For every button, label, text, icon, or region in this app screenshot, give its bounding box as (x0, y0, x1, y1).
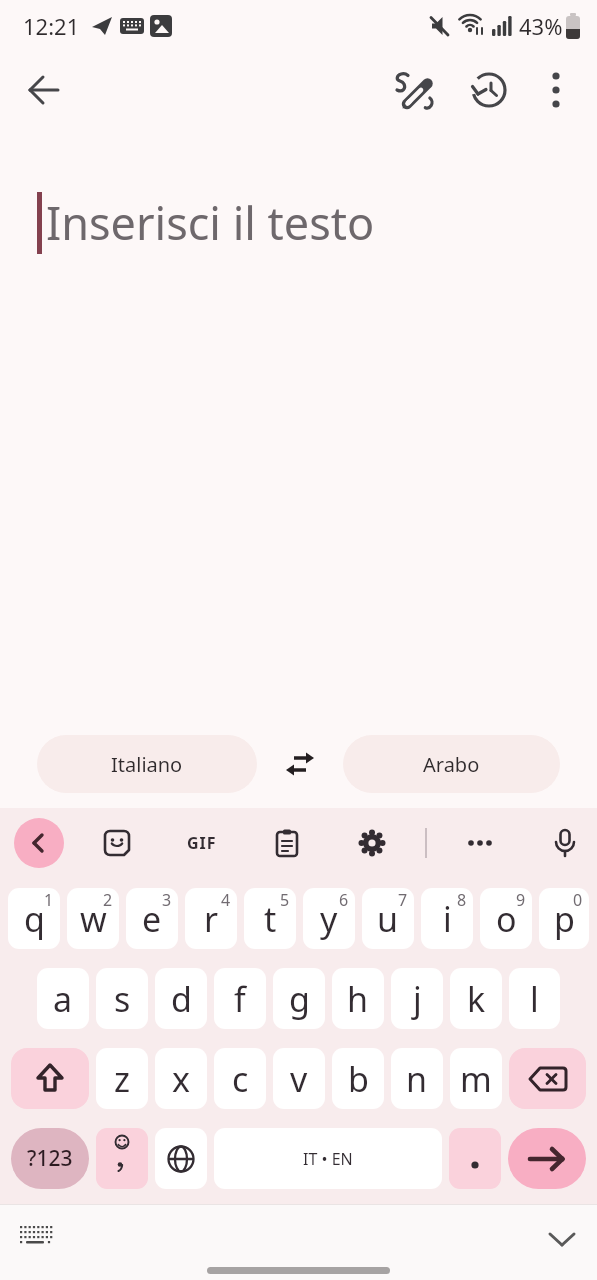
button[interactable] (92, 818, 142, 868)
button[interactable]: t (244, 888, 296, 949)
staticText: u (377, 896, 399, 942)
staticText: z (114, 1056, 130, 1102)
staticText: r (204, 896, 219, 942)
staticText: 6 (339, 889, 349, 911)
button[interactable]: j (391, 968, 443, 1029)
button[interactable]: IT • EN (214, 1128, 442, 1189)
button[interactable]: Arabo (343, 735, 560, 793)
button[interactable]: d (155, 968, 207, 1029)
button[interactable]: Italiano (37, 735, 257, 793)
staticText: 12:21 (23, 11, 80, 41)
staticText: q (24, 896, 45, 942)
staticText: Italiano (111, 751, 183, 778)
staticText: h (347, 976, 369, 1022)
button[interactable] (262, 818, 312, 868)
staticText: i (443, 896, 452, 942)
staticText: m (460, 1056, 492, 1102)
button[interactable]: h (332, 968, 384, 1029)
staticText: o (496, 896, 517, 942)
button[interactable] (540, 818, 590, 868)
staticText: 0 (573, 889, 583, 911)
button[interactable] (449, 1128, 501, 1189)
button[interactable] (11, 1048, 89, 1109)
button[interactable] (509, 1048, 586, 1109)
staticText: IT • EN (303, 1148, 353, 1170)
staticText: a (53, 976, 73, 1022)
button[interactable] (12, 1216, 58, 1262)
staticText: d (171, 976, 192, 1022)
button[interactable] (14, 818, 64, 868)
staticText: 2 (103, 889, 113, 911)
button[interactable]: p (539, 888, 589, 949)
staticText: Inserisci il testo (46, 192, 375, 253)
staticText: n (406, 1056, 428, 1102)
button[interactable]: q (8, 888, 60, 949)
button[interactable]: w (67, 888, 119, 949)
staticText: 1 (44, 889, 54, 911)
button[interactable]: v (273, 1048, 325, 1109)
button[interactable]: k (450, 968, 502, 1029)
staticText: y (320, 896, 338, 942)
button[interactable]: GIF (177, 818, 227, 868)
staticText: j (413, 976, 422, 1022)
staticText: w (80, 896, 107, 942)
button[interactable]: g (273, 968, 325, 1029)
button[interactable] (347, 818, 397, 868)
staticText: GIF (187, 832, 217, 854)
staticText: f (234, 976, 246, 1022)
staticText: e (142, 896, 162, 942)
staticText: 3 (162, 889, 172, 911)
button[interactable] (276, 740, 324, 788)
staticText: ?123 (27, 1144, 73, 1173)
button[interactable]: c (214, 1048, 266, 1109)
staticText: k (467, 976, 486, 1022)
staticText: 43% (519, 11, 563, 41)
button[interactable]: f (214, 968, 266, 1029)
button[interactable] (508, 1128, 586, 1189)
button[interactable] (532, 66, 580, 114)
button[interactable]: n (391, 1048, 443, 1109)
button[interactable]: a (37, 968, 89, 1029)
button[interactable]: o (480, 888, 532, 949)
button[interactable] (539, 1216, 585, 1262)
button[interactable]: ?123 (11, 1128, 89, 1189)
button[interactable]: e (126, 888, 178, 949)
staticText: g (289, 976, 310, 1022)
staticText: 4 (221, 889, 231, 911)
button[interactable]: s (96, 968, 148, 1029)
button[interactable]: u (362, 888, 414, 949)
staticText: v (290, 1056, 308, 1102)
staticText: c (232, 1056, 249, 1102)
button[interactable]: r (185, 888, 237, 949)
staticText: 7 (398, 889, 408, 911)
staticText: p (554, 896, 575, 942)
button[interactable]: y (303, 888, 355, 949)
button[interactable]: l (509, 968, 560, 1029)
button[interactable]: i (421, 888, 473, 949)
button[interactable] (463, 64, 515, 116)
button[interactable] (18, 64, 70, 116)
staticText: 5 (280, 889, 290, 911)
staticText: b (348, 1056, 369, 1102)
staticText: s (114, 976, 131, 1022)
button[interactable]: x (155, 1048, 207, 1109)
staticText: l (530, 976, 539, 1022)
button[interactable]: b (332, 1048, 384, 1109)
button[interactable]: z (96, 1048, 148, 1109)
button[interactable] (155, 1128, 207, 1189)
staticText: Arabo (423, 751, 480, 778)
staticText: 8 (457, 889, 467, 911)
staticText: t (264, 896, 277, 942)
staticText: x (172, 1056, 190, 1102)
button[interactable]: m (450, 1048, 502, 1109)
staticText: 9 (516, 889, 526, 911)
button[interactable] (455, 818, 505, 868)
button[interactable] (96, 1128, 148, 1189)
button[interactable] (389, 64, 441, 116)
